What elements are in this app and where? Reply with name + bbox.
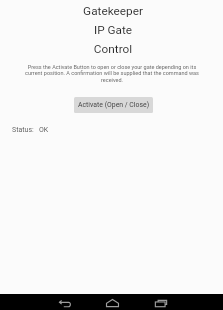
staticText: Gatekeeper IP Gate Control — [3, 4, 223, 56]
staticText: OK — [39, 126, 49, 134]
staticText: Activate (Open / Close) — [78, 101, 150, 109]
button[interactable]: Home — [98, 294, 127, 310]
staticText: Status: — [12, 126, 34, 134]
button[interactable]: Back — [50, 294, 79, 310]
staticText: Press the Activate Button to open or clo… — [11, 64, 213, 84]
button[interactable]: Recent apps — [146, 294, 175, 310]
button[interactable]: Activate (Open / Close) — [74, 97, 153, 113]
